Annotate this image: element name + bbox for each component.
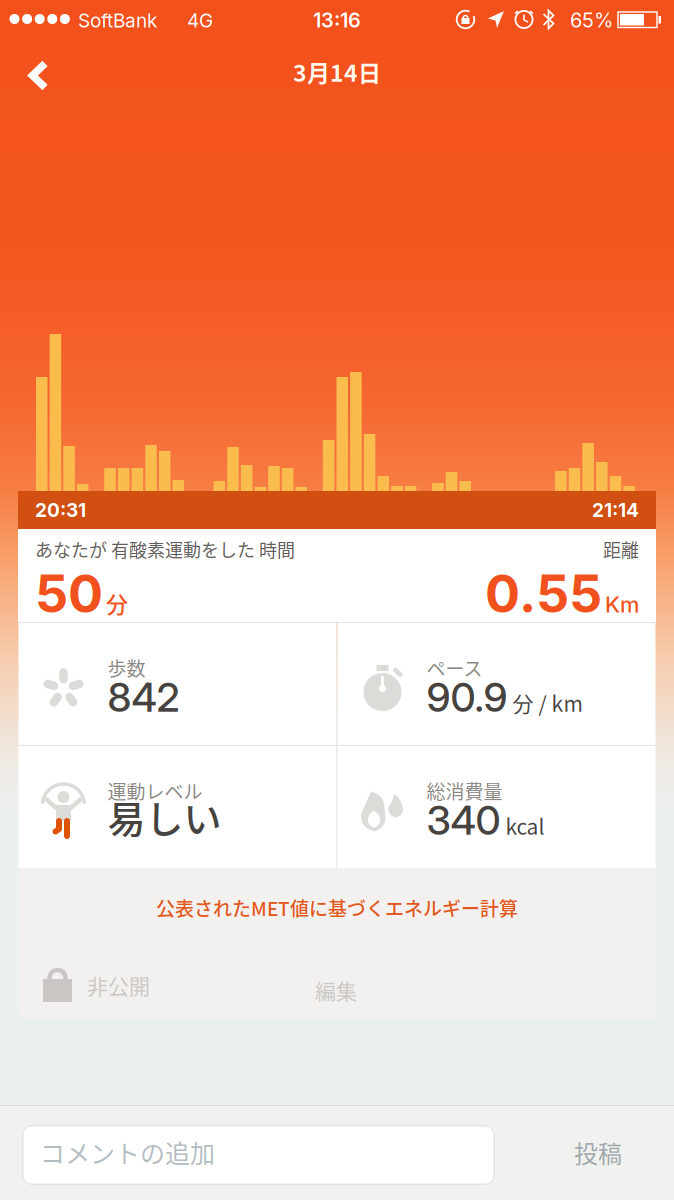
staticText: あなたが 有酸素運動をした 時間 <box>35 536 295 562</box>
staticText: 総消費量 <box>426 777 502 804</box>
button[interactable]: 公表されたMET値に基づくエネルギー計算 <box>156 894 518 921</box>
staticText: 運動レベル <box>107 777 202 804</box>
staticText: 842 <box>107 673 179 721</box>
staticText: SoftBank <box>78 9 157 32</box>
staticText: 4G <box>187 9 213 32</box>
button[interactable]: 編集 <box>315 975 357 1005</box>
staticText: 歩数 <box>107 654 145 681</box>
staticText: 0.55 <box>485 562 602 625</box>
staticText: 13:16 <box>313 8 361 32</box>
button[interactable]: コメントの追加 <box>22 1125 495 1185</box>
button[interactable]: 戻る <box>16 52 62 99</box>
staticText: 易しい <box>107 789 221 844</box>
staticText: 50 <box>35 562 103 625</box>
staticText: 距離 <box>603 536 639 562</box>
button[interactable]: 非公開 <box>41 965 150 1002</box>
staticText: kcal <box>505 810 544 841</box>
staticText: 20:31 <box>35 498 86 521</box>
button[interactable]: 投稿 <box>574 1135 622 1170</box>
staticText: 編集 <box>315 975 357 1005</box>
staticText: 公表されたMET値に基づくエネルギー計算 <box>156 894 518 921</box>
staticText: ペース <box>426 654 482 681</box>
staticText: 分 / km <box>512 687 582 718</box>
staticText: コメントの追加 <box>40 1134 215 1170</box>
staticText: 投稿 <box>574 1135 622 1170</box>
staticText: 分 <box>106 587 128 619</box>
staticText: Km <box>605 591 639 618</box>
staticText: 3月14日 <box>293 55 381 88</box>
staticText: 90.9 <box>426 673 507 721</box>
staticText: 65% <box>570 8 613 32</box>
staticText: 21:14 <box>592 498 639 521</box>
staticText: 非公開 <box>87 970 150 1000</box>
staticText: 340 <box>426 796 500 844</box>
